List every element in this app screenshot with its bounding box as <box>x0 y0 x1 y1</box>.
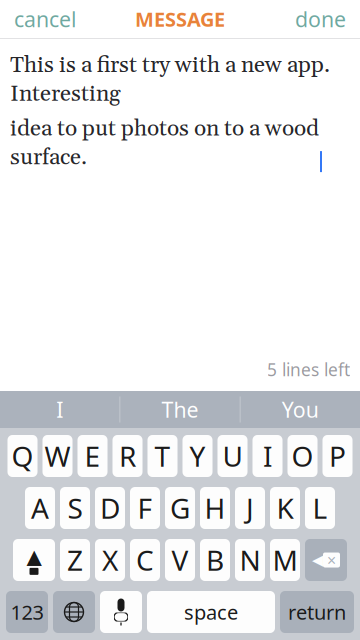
staticText: done <box>295 5 346 33</box>
staticText: The <box>161 395 198 424</box>
button[interactable]: Shift <box>13 539 55 581</box>
staticText: S <box>67 489 82 527</box>
button[interactable]: Z <box>60 539 90 581</box>
staticText: ▲ <box>26 545 41 568</box>
button[interactable]: S <box>60 487 90 529</box>
staticText: Z <box>67 541 83 579</box>
button[interactable]: O <box>287 435 317 477</box>
button[interactable]: T <box>147 435 177 477</box>
button[interactable]: B <box>200 539 230 581</box>
button[interactable]: U <box>217 435 247 477</box>
button[interactable]: Dictate <box>100 591 142 633</box>
staticText: D <box>100 489 120 527</box>
button[interactable]: W <box>42 435 72 477</box>
button[interactable]: Next keyboard <box>53 591 95 633</box>
button[interactable]: return <box>280 591 354 633</box>
staticText: G <box>170 489 190 527</box>
staticText: J <box>246 489 254 527</box>
button[interactable]: K <box>270 487 300 529</box>
button[interactable]: I <box>0 391 119 428</box>
staticText: L <box>312 489 327 527</box>
staticText: Q <box>11 437 33 475</box>
staticText: ◀ <box>312 552 323 568</box>
staticText: Y <box>189 437 205 475</box>
button[interactable]: N <box>235 539 265 581</box>
button[interactable]: E <box>77 435 107 477</box>
staticText: idea to put photos on to a wood surface. <box>10 115 319 172</box>
button[interactable]: done <box>281 0 360 41</box>
staticText: E <box>84 437 100 475</box>
button[interactable]: 123 <box>6 591 48 633</box>
staticText: B <box>206 541 224 579</box>
staticText: T <box>154 437 170 475</box>
button[interactable]: R <box>112 435 142 477</box>
staticText: U <box>222 437 242 475</box>
staticText: 123 <box>10 599 43 625</box>
staticText: V <box>171 541 188 579</box>
button[interactable]: H <box>200 487 230 529</box>
button[interactable]: A <box>25 487 55 529</box>
staticText: O <box>291 437 313 475</box>
staticText: I <box>56 395 63 424</box>
staticText: You <box>282 395 319 424</box>
button[interactable]: J <box>235 487 265 529</box>
staticText: cancel <box>14 5 77 33</box>
button[interactable]: The <box>120 391 240 428</box>
button[interactable]: cancel <box>0 0 91 41</box>
staticText: P <box>329 437 346 475</box>
button[interactable]: Q <box>7 435 37 477</box>
staticText: 5 lines left <box>267 358 350 381</box>
button[interactable]: You <box>241 391 360 428</box>
staticText: MESSAGE <box>135 6 225 32</box>
staticText: M <box>272 541 297 579</box>
button[interactable]: L <box>305 487 335 529</box>
staticText: C <box>136 541 154 579</box>
button[interactable]: G <box>165 487 195 529</box>
button[interactable]: Delete <box>305 539 347 581</box>
staticText: R <box>119 437 136 475</box>
button[interactable]: V <box>165 539 195 581</box>
staticText: This is a first try with a new app. Inte… <box>10 51 330 109</box>
button[interactable]: space <box>147 591 275 633</box>
staticText: N <box>239 541 260 579</box>
button[interactable]: D <box>95 487 125 529</box>
staticText: A <box>31 489 49 527</box>
button[interactable]: P <box>322 435 352 477</box>
button[interactable]: Y <box>182 435 212 477</box>
staticText: space <box>184 599 238 625</box>
staticText: H <box>204 489 225 527</box>
staticText: F <box>137 489 152 527</box>
staticText: X <box>102 541 118 579</box>
button[interactable]: C <box>130 539 160 581</box>
staticText: × <box>327 549 336 571</box>
button[interactable]: I <box>252 435 282 477</box>
staticText: W <box>44 437 70 475</box>
staticText: return <box>288 599 346 625</box>
button[interactable]: F <box>130 487 160 529</box>
staticText: K <box>276 489 293 527</box>
button[interactable]: X <box>95 539 125 581</box>
staticText: I <box>263 437 272 475</box>
button[interactable]: M <box>270 539 300 581</box>
